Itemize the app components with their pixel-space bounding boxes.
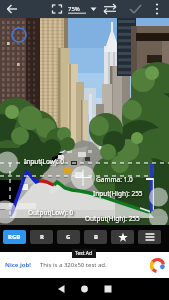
button[interactable] (0, 0, 24, 18)
staticText: G (66, 233, 71, 241)
button[interactable]: G (57, 230, 80, 244)
staticText: Output(High): 255 (85, 214, 140, 223)
button[interactable] (98, 0, 122, 18)
staticText: Output(Low): 0 (28, 208, 74, 217)
button[interactable]: RGB (3, 230, 26, 244)
button[interactable]: B (84, 230, 107, 244)
staticText: Gamma: 1.0 (96, 175, 133, 184)
staticText: 75% (68, 5, 80, 13)
button[interactable] (138, 230, 161, 244)
staticText: B (94, 233, 98, 241)
staticText: R (40, 233, 44, 241)
staticText: Nice job! (5, 261, 31, 269)
button[interactable] (57, 278, 113, 300)
staticText: Test Ad (75, 250, 93, 257)
staticText: Input(Low): 0 (24, 157, 64, 166)
staticText: RGB (8, 233, 21, 241)
staticText: This is a 320x50 test ad. (40, 261, 107, 269)
button[interactable] (144, 0, 164, 18)
staticText: Input(High): 255 (93, 189, 143, 198)
button[interactable]: R (30, 230, 53, 244)
button[interactable] (48, 0, 66, 18)
button[interactable] (111, 230, 134, 244)
button[interactable] (66, 0, 98, 18)
button[interactable]: Nice job! (0, 252, 169, 278)
button[interactable] (122, 0, 144, 18)
